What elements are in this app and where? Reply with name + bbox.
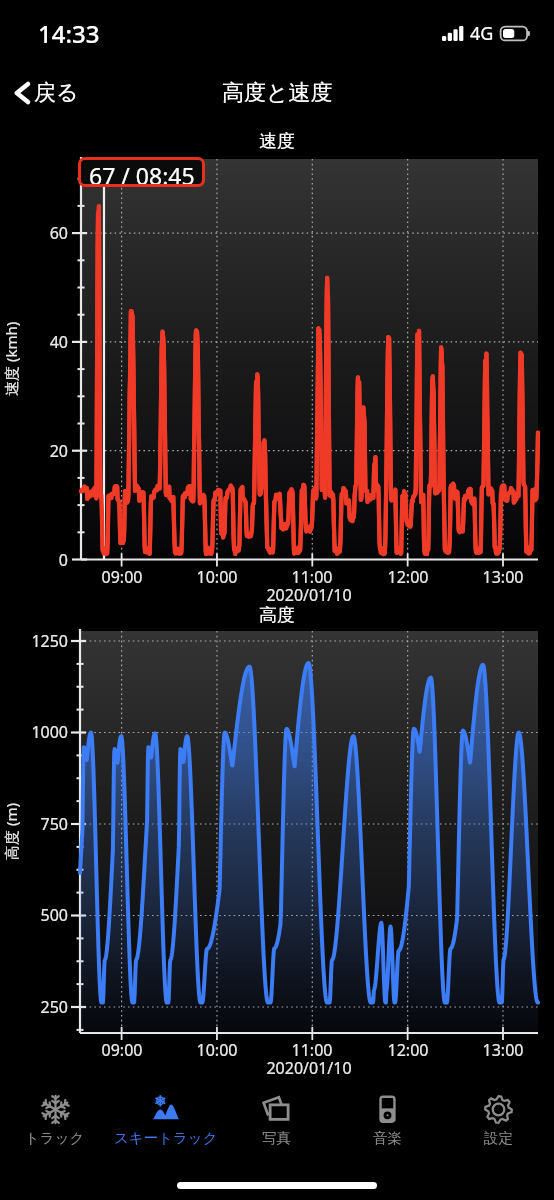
staticText: 500 (0, 904, 68, 926)
staticText: 67 / 08:45 (89, 160, 195, 184)
button[interactable]: スキートラック (110, 1085, 221, 1157)
staticText: トラック (25, 1129, 85, 1147)
staticText: 2020/01/10 (249, 584, 369, 606)
button[interactable]: 写真 (221, 1085, 332, 1157)
staticText: 音楽 (373, 1129, 402, 1147)
staticText: 速度 (kmh) (1, 321, 21, 396)
button[interactable]: トラック (0, 1085, 110, 1157)
staticText: 11:00 (280, 566, 344, 588)
staticText: 2020/01/10 (249, 1057, 369, 1079)
staticText: 10:00 (185, 566, 249, 588)
staticText: 0 (0, 549, 68, 571)
staticText: 1250 (0, 630, 68, 652)
staticText: 10:00 (185, 1039, 249, 1061)
button[interactable]: 設定 (443, 1085, 554, 1157)
staticText: 13:00 (471, 1039, 535, 1061)
staticText: 写真 (262, 1129, 291, 1147)
staticText: 4G (470, 21, 494, 46)
staticText: 14:33 (38, 17, 100, 50)
staticText: 20 (0, 440, 68, 462)
staticText: 高度 (m) (1, 803, 21, 860)
staticText: 高度 (259, 604, 295, 627)
staticText: 高度と速度 (222, 79, 333, 107)
staticText: 12:00 (376, 1039, 440, 1061)
staticText: 09:00 (90, 1039, 154, 1061)
staticText: 13:00 (471, 566, 535, 588)
button[interactable]: 音楽 (332, 1085, 443, 1157)
staticText: 40 (0, 331, 68, 353)
staticText: 60 (0, 222, 68, 244)
staticText: 12:00 (376, 566, 440, 588)
staticText: 戻る (34, 79, 79, 107)
staticText: スキートラック (114, 1129, 218, 1147)
staticText: 速度 (259, 130, 295, 153)
staticText: 11:00 (280, 1039, 344, 1061)
staticText: 750 (0, 813, 68, 835)
staticText: 設定 (484, 1129, 513, 1147)
staticText: 09:00 (90, 566, 154, 588)
staticText: 250 (0, 996, 68, 1018)
staticText: 1000 (0, 721, 68, 743)
button[interactable]: 戻る (0, 79, 91, 107)
